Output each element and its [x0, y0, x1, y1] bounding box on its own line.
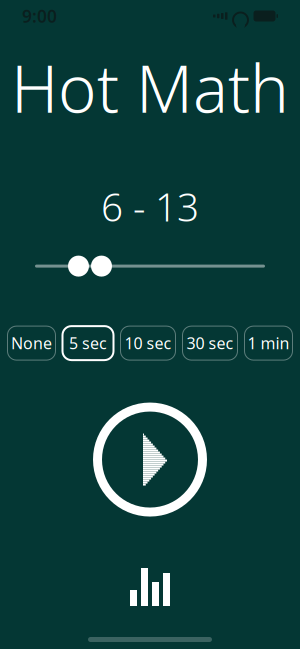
staticText: 5 sec: [69, 332, 107, 354]
staticText: 9:00: [22, 4, 57, 27]
button[interactable]: Statistics: [118, 559, 182, 615]
staticText: 6 - 13: [101, 181, 199, 232]
button[interactable]: None: [7, 326, 55, 360]
button[interactable]: Start: [90, 400, 210, 520]
staticText: 10 sec: [124, 332, 171, 354]
button[interactable]: 1 min: [244, 326, 292, 360]
staticText: 1 min: [247, 332, 289, 354]
staticText: 30 sec: [186, 332, 233, 354]
staticText: Hot Math: [11, 44, 289, 131]
button[interactable]: 30 sec: [182, 326, 237, 360]
staticText: None: [11, 332, 52, 354]
button[interactable]: 10 sec: [120, 326, 175, 360]
button[interactable]: 5 sec: [62, 326, 113, 360]
